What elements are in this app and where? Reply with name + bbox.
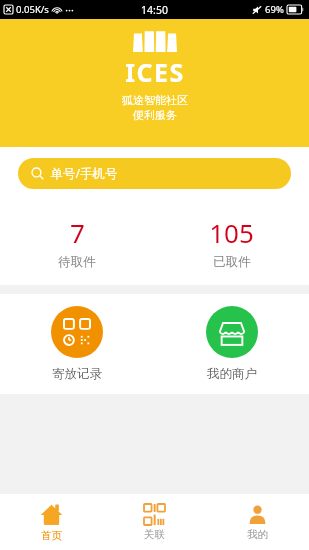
button[interactable]: 105	[154, 209, 309, 276]
staticText: 狐途智能社区	[122, 93, 188, 107]
other: 关联	[144, 504, 165, 525]
staticText: 寄放记录	[52, 366, 102, 382]
staticText: 已取件	[213, 254, 251, 270]
other: 我的	[247, 504, 268, 525]
button[interactable]: 寄放记录	[0, 298, 154, 390]
staticText: 14:50	[141, 3, 168, 17]
staticText: 0.05K/s	[16, 3, 49, 16]
staticText: 单号/手机号	[50, 165, 118, 182]
staticText: 待取件	[58, 254, 96, 270]
other: 我的商户	[206, 306, 258, 358]
staticText: ICES	[125, 55, 185, 89]
button[interactable]: 首页	[0, 498, 103, 547]
staticText: 便利服务	[133, 108, 177, 122]
staticText: 我的	[247, 528, 268, 541]
other: 寄放记录	[51, 306, 103, 358]
staticText: 关联	[144, 528, 165, 541]
button[interactable]: 我的	[206, 499, 309, 546]
staticText: 我的商户	[207, 366, 257, 382]
other: 首页	[40, 503, 63, 526]
button[interactable]: 我的商户	[154, 298, 309, 390]
button[interactable]: 关联	[103, 499, 206, 546]
button[interactable]: 7	[0, 209, 154, 276]
staticText: 69%	[265, 3, 284, 16]
staticText: 105	[209, 215, 254, 250]
button[interactable]: 单号/手机号	[18, 158, 291, 189]
staticText: 7	[70, 215, 85, 250]
staticText: 首页	[41, 529, 62, 542]
